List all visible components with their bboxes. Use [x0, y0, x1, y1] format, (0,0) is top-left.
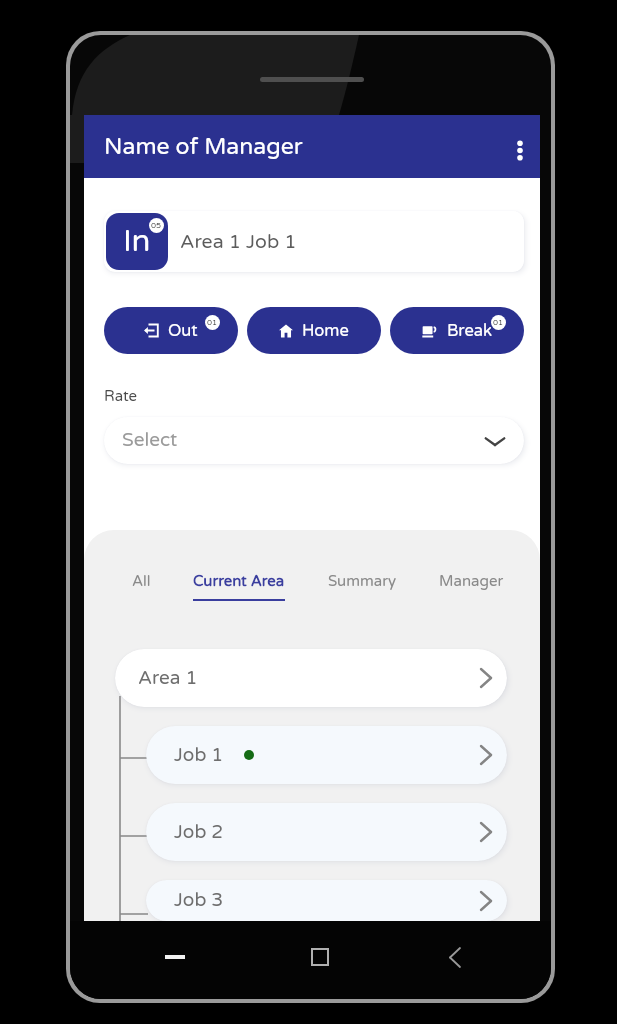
staticText: In: [123, 223, 151, 260]
button[interactable]: Job 3: [146, 880, 507, 921]
staticText: Home: [302, 321, 349, 341]
button[interactable]: Job 2: [146, 803, 507, 861]
button[interactable]: Area 1 Job 1: [104, 211, 524, 272]
staticText: Job 1: [174, 744, 224, 767]
staticText: Current Area: [193, 572, 285, 590]
staticText: Summary: [328, 572, 397, 590]
button[interactable]: Summary: [328, 572, 397, 601]
staticText: Area 1 Job 1: [180, 230, 297, 253]
staticText: All: [132, 572, 151, 590]
staticText: Rate: [104, 387, 138, 405]
staticText: Select: [122, 429, 178, 452]
staticText: Break: [447, 321, 492, 341]
button[interactable]: Home: [247, 307, 381, 354]
button[interactable]: Out: [104, 307, 238, 354]
button[interactable]: More options: [501, 131, 539, 169]
staticText: Manager: [439, 572, 504, 590]
button[interactable]: Select: [104, 417, 524, 464]
button[interactable]: Home: [302, 939, 338, 975]
button[interactable]: In: [106, 213, 168, 270]
staticText: 05: [151, 221, 162, 231]
staticText: Name of Manager: [104, 133, 303, 161]
button[interactable]: Back: [437, 939, 473, 975]
staticText: Job 2: [174, 821, 224, 844]
staticText: 01: [207, 318, 218, 328]
button[interactable]: Job 1: [146, 726, 507, 784]
button[interactable]: Break: [390, 307, 524, 354]
staticText: 01: [493, 318, 504, 328]
button[interactable]: Area 1: [115, 649, 507, 707]
button[interactable]: Manager: [439, 572, 504, 601]
button[interactable]: Current Area: [193, 572, 285, 601]
button[interactable]: All: [132, 572, 151, 601]
staticText: Out: [168, 321, 198, 341]
button[interactable]: Recents: [157, 939, 193, 975]
staticText: Job 3: [174, 889, 224, 912]
staticText: Area 1: [138, 667, 198, 690]
